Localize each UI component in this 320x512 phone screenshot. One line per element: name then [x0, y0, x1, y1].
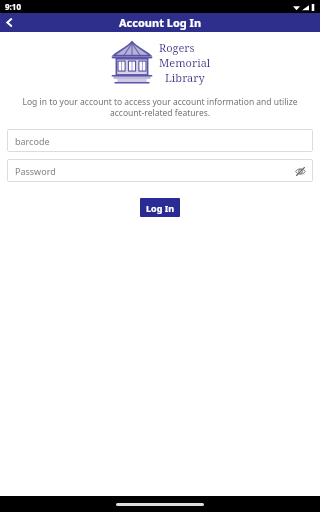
staticText: Memorial [159, 55, 211, 70]
button[interactable]: Show password [293, 164, 307, 178]
button[interactable]: Password [7, 159, 313, 182]
staticText: barcode [15, 135, 50, 147]
button[interactable]: Log In [140, 198, 180, 217]
staticText: Password [15, 165, 56, 177]
staticText: 9:10 [5, 1, 21, 12]
staticText: Log in to your account to access your ac… [22, 96, 298, 118]
staticText: Library [165, 70, 205, 85]
button[interactable]: Back [0, 13, 19, 32]
staticText: Account Log In [119, 15, 202, 30]
staticText: Rogers [159, 40, 195, 55]
button[interactable]: barcode [7, 129, 313, 152]
staticText: Log In [146, 202, 175, 214]
